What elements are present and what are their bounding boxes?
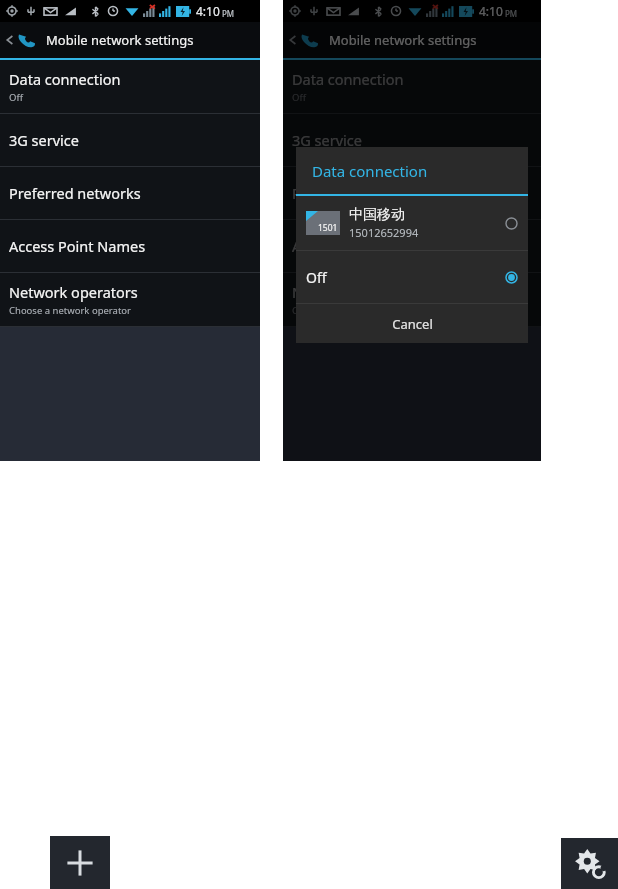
staticText: 3G service (9, 130, 79, 150)
staticText: Off (9, 91, 23, 104)
button[interactable]: Back (283, 22, 541, 58)
staticText: Choose a network operator (9, 304, 131, 317)
staticText: 4:10 (196, 3, 220, 19)
staticText: 3G service (292, 130, 362, 150)
staticText: Choose a network operator (292, 304, 414, 317)
button[interactable]: Preferred networks (283, 167, 541, 219)
staticText: 中国移动 (349, 206, 405, 224)
staticText: Data connection (312, 161, 428, 181)
button[interactable]: Back (0, 22, 260, 58)
button[interactable]: Network operators (0, 273, 260, 326)
other: Back (6, 36, 14, 44)
other: Back (289, 36, 297, 44)
staticText: Access Point Names (9, 236, 146, 256)
button[interactable]: 3G service (283, 114, 541, 166)
button[interactable]: Settings (561, 838, 618, 889)
staticText: Preferred networks (9, 183, 141, 203)
button[interactable]: Network operators (283, 273, 541, 326)
staticText: PM (505, 8, 518, 19)
button[interactable]: Access Point Names (283, 220, 541, 272)
staticText: Mobile network settings (329, 31, 477, 49)
button[interactable]: 3G service (0, 114, 260, 166)
button[interactable]: 1501 (296, 196, 528, 250)
staticText: 1501 (318, 222, 338, 234)
button[interactable]: Cancel (296, 304, 528, 343)
staticText: Data connection (9, 69, 121, 89)
staticText: 4:10 (479, 3, 503, 19)
staticText: Data connection (292, 69, 404, 89)
button[interactable]: Data connection (0, 60, 260, 113)
button[interactable]: Data connection (283, 60, 541, 113)
staticText: Access Point Names (292, 236, 429, 256)
button[interactable]: Access Point Names (0, 220, 260, 272)
staticText: Off (306, 268, 505, 287)
button[interactable]: Preferred networks (0, 167, 260, 219)
staticText: Network operators (292, 282, 421, 302)
staticText: Mobile network settings (46, 31, 194, 49)
staticText: Network operators (9, 282, 138, 302)
staticText: Off (292, 91, 306, 104)
staticText: 15012652994 (349, 225, 419, 240)
staticText: PM (222, 8, 235, 19)
staticText: Preferred networks (292, 183, 424, 203)
staticText: Cancel (392, 315, 433, 333)
button[interactable]: Off (296, 251, 528, 303)
button[interactable]: Add (50, 836, 110, 889)
